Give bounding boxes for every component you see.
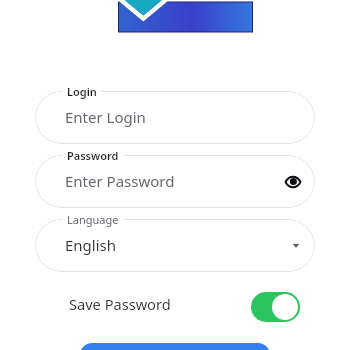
staticText: Password <box>67 148 119 163</box>
button[interactable] <box>35 91 315 144</box>
button[interactable]: Show password <box>279 168 307 196</box>
staticText: Save Password <box>69 294 171 314</box>
button[interactable] <box>35 219 315 272</box>
staticText: Language <box>67 212 119 227</box>
staticText: Login <box>67 84 97 99</box>
button[interactable]: Select language <box>282 232 310 260</box>
button[interactable] <box>35 155 315 208</box>
staticText: Enter Password <box>65 171 175 191</box>
button[interactable]: Save Password toggle <box>251 292 300 322</box>
staticText: Enter Login <box>65 107 146 127</box>
button[interactable]: LOGIN <box>80 343 270 350</box>
staticText: English <box>65 235 117 255</box>
